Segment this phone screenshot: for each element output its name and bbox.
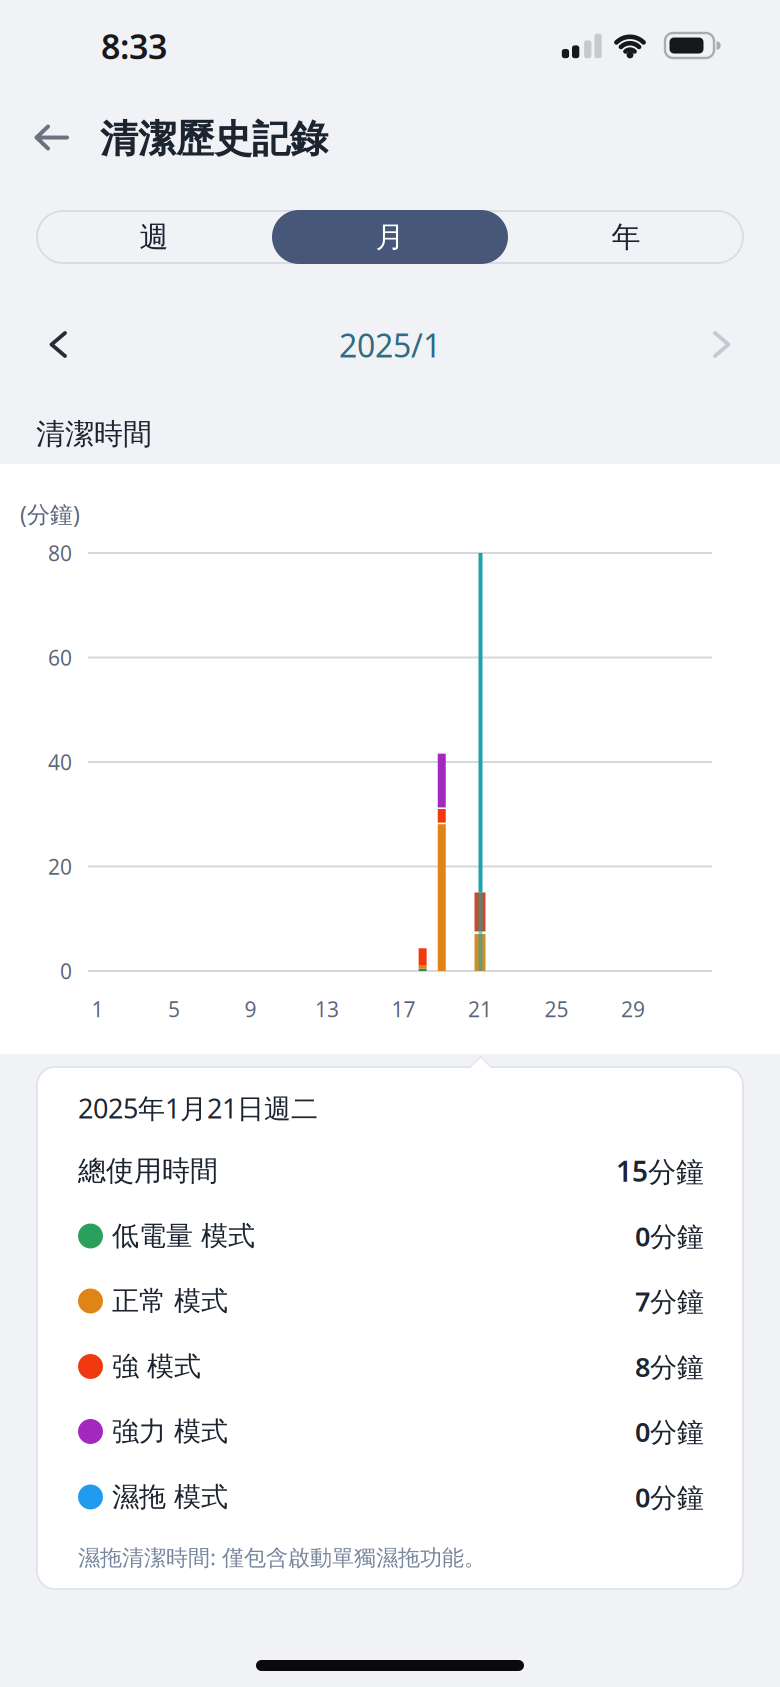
staticText: 月	[375, 219, 404, 255]
staticText: 總使用時間	[78, 1154, 218, 1188]
staticText: 20	[48, 853, 72, 880]
staticText: 40	[48, 748, 72, 776]
staticText: 2025年1月21日週二	[78, 1090, 318, 1126]
staticText: 強力 模式	[112, 1415, 228, 1448]
staticText: 5	[168, 995, 180, 1023]
staticText: 強 模式	[112, 1350, 201, 1383]
staticText: 濕拖 模式	[112, 1480, 228, 1514]
staticText: 29	[621, 995, 645, 1023]
staticText: (分鐘)	[20, 499, 80, 529]
staticText: 清潔時間	[36, 416, 152, 452]
staticText: 17	[391, 995, 415, 1023]
staticText: 清潔歷史記錄	[100, 116, 328, 162]
staticText: 正常 模式	[112, 1284, 228, 1318]
staticText: 週	[139, 219, 168, 255]
staticText: 80	[48, 539, 72, 567]
staticText: 15分鐘	[616, 1152, 704, 1190]
staticText: 21	[468, 995, 492, 1023]
staticText: 60	[48, 644, 72, 671]
staticText: 年	[611, 219, 640, 255]
staticText: 7分鐘	[635, 1283, 704, 1319]
staticText: 8分鐘	[635, 1349, 704, 1384]
staticText: 濕拖清潔時間: 僅包含啟動單獨濕拖功能。	[78, 1542, 486, 1572]
staticText: 13	[315, 995, 339, 1023]
staticText: 0分鐘	[635, 1414, 704, 1449]
staticText: 0分鐘	[635, 1479, 704, 1515]
staticText: 8:33	[101, 23, 167, 69]
staticText: 0	[60, 957, 72, 985]
staticText: 1	[91, 995, 103, 1023]
staticText: 0分鐘	[635, 1218, 704, 1254]
staticText: 25	[544, 995, 568, 1023]
staticText: 9	[244, 995, 256, 1023]
staticText: 低電量 模式	[112, 1219, 255, 1253]
staticText: 2025/1	[339, 324, 441, 366]
